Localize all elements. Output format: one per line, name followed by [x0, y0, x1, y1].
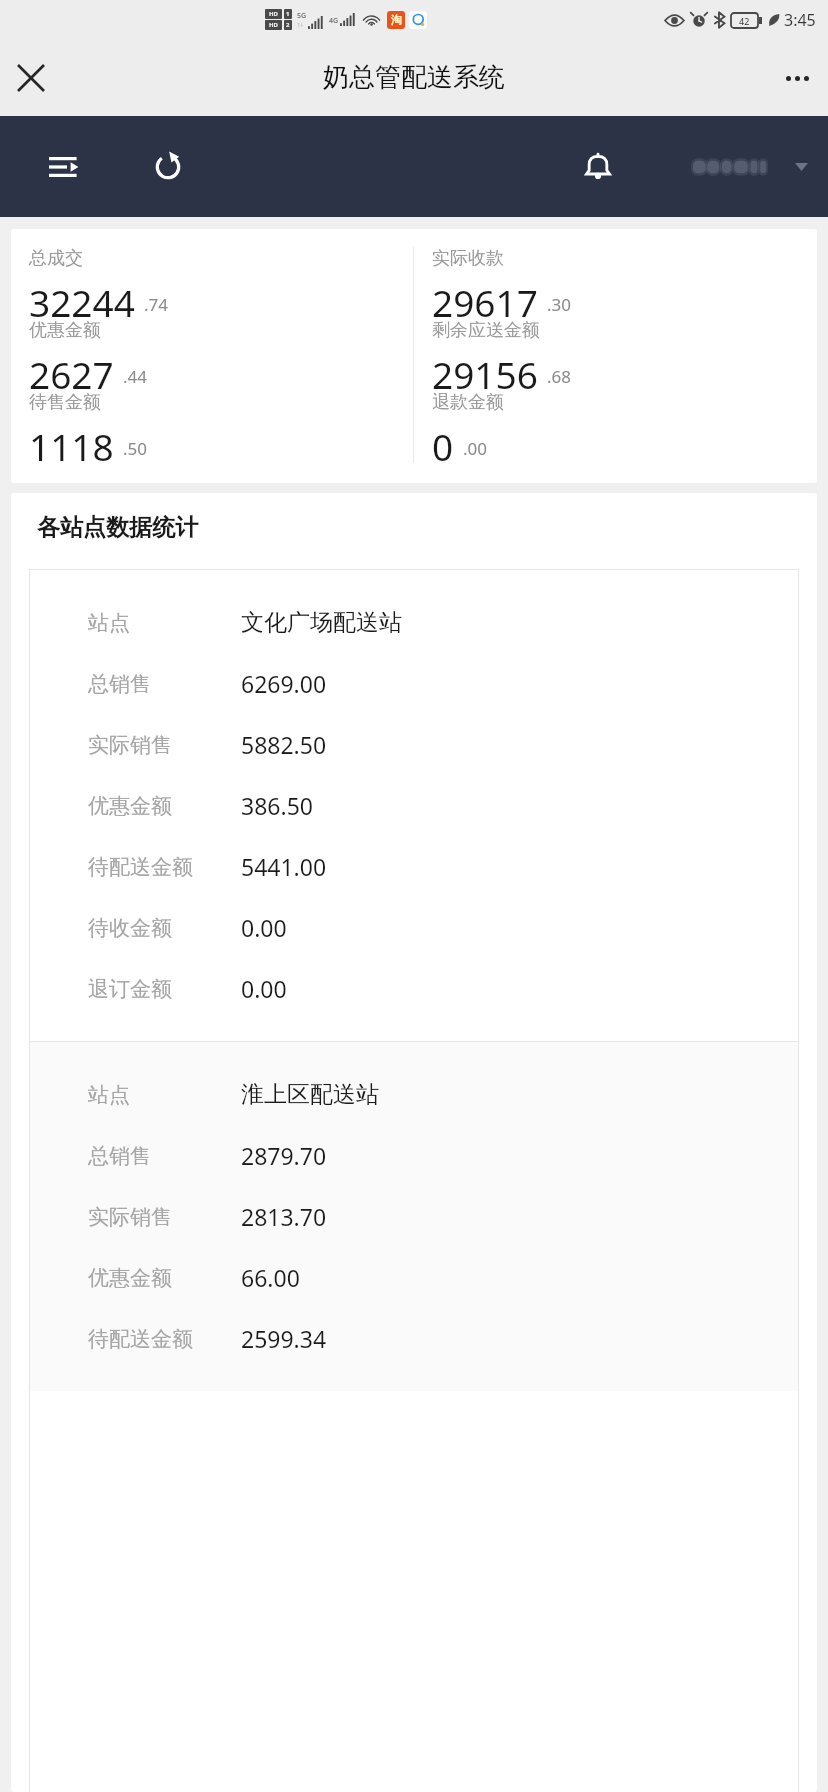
staticText: 66.00 — [241, 1262, 300, 1293]
staticText: 退款金额 — [432, 391, 504, 414]
staticText: 待收金额 — [88, 915, 172, 941]
staticText: 0.00 — [241, 912, 287, 943]
staticText: 29617 — [432, 277, 538, 319]
staticText: 5882.50 — [241, 729, 327, 760]
button[interactable]: 剩余应送金额 — [414, 319, 817, 391]
staticText: 386.50 — [241, 790, 313, 821]
staticText: .74 — [144, 293, 169, 316]
staticText: 淘 — [391, 13, 402, 27]
button[interactable]: Account — [687, 148, 814, 186]
staticText: 实际销售 — [88, 732, 172, 758]
staticText: 实际销售 — [88, 1204, 172, 1230]
staticText: 0.00 — [241, 973, 287, 1004]
staticText: 1118 — [29, 421, 114, 463]
staticText: 1 — [286, 10, 290, 18]
staticText: 奶总管配送系统 — [323, 61, 505, 94]
staticText: 退订金额 — [88, 976, 172, 1002]
staticText: 2879.70 — [241, 1140, 327, 1171]
staticText: 4G — [329, 16, 339, 26]
staticText: .30 — [547, 293, 572, 316]
staticText: 1l· — [297, 21, 304, 29]
staticText: 2599.34 — [241, 1323, 327, 1354]
staticText: 42 — [739, 15, 750, 27]
staticText: 2 — [286, 21, 290, 29]
staticText: 优惠金额 — [88, 793, 172, 819]
button[interactable]: Menu — [38, 141, 90, 193]
staticText: 站点 — [88, 610, 130, 636]
button[interactable]: More options — [766, 47, 828, 109]
staticText: 优惠金额 — [29, 319, 101, 342]
staticText: 5441.00 — [241, 851, 327, 882]
staticText: 总成交 — [29, 247, 83, 270]
staticText: 3:45 — [784, 9, 816, 31]
staticText: .50 — [123, 437, 148, 460]
staticText: .44 — [123, 365, 148, 388]
button[interactable]: 总成交 — [11, 247, 413, 319]
button[interactable]: 待售金额 — [11, 391, 413, 463]
button[interactable]: Refresh — [142, 141, 194, 193]
staticText: 待配送金额 — [88, 1326, 193, 1352]
button[interactable]: Notifications — [572, 141, 624, 193]
staticText: 6269.00 — [241, 668, 327, 699]
staticText: 待配送金额 — [88, 854, 193, 880]
staticText: 淮上区配送站 — [241, 1080, 379, 1109]
staticText: 总销售 — [88, 1143, 151, 1169]
staticText: 2627 — [29, 349, 114, 391]
button[interactable]: 实际收款 — [414, 247, 817, 319]
staticText: 总销售 — [88, 671, 151, 697]
button[interactable]: 退款金额 — [414, 391, 817, 463]
staticText: 实际收款 — [432, 247, 504, 270]
staticText: 0 — [432, 421, 454, 463]
button[interactable]: 优惠金额 — [11, 319, 413, 391]
staticText: 2813.70 — [241, 1201, 327, 1232]
staticText: 各站点数据统计 — [37, 513, 198, 542]
button[interactable]: Close — [0, 47, 62, 109]
button[interactable]: 站点 — [29, 570, 799, 1041]
staticText: HD — [269, 10, 278, 18]
staticText: 29156 — [432, 349, 538, 391]
staticText: 剩余应送金额 — [432, 319, 540, 342]
staticText: 文化广场配送站 — [241, 608, 402, 637]
staticText: 站点 — [88, 1082, 130, 1108]
staticText: .00 — [463, 437, 488, 460]
staticText: 5G — [297, 11, 307, 21]
button[interactable]: 站点 — [29, 1042, 799, 1391]
staticText: HD — [269, 21, 278, 29]
staticText: 待售金额 — [29, 391, 101, 414]
staticText: .68 — [547, 365, 572, 388]
staticText: 32244 — [29, 277, 135, 319]
staticText: 优惠金额 — [88, 1265, 172, 1291]
